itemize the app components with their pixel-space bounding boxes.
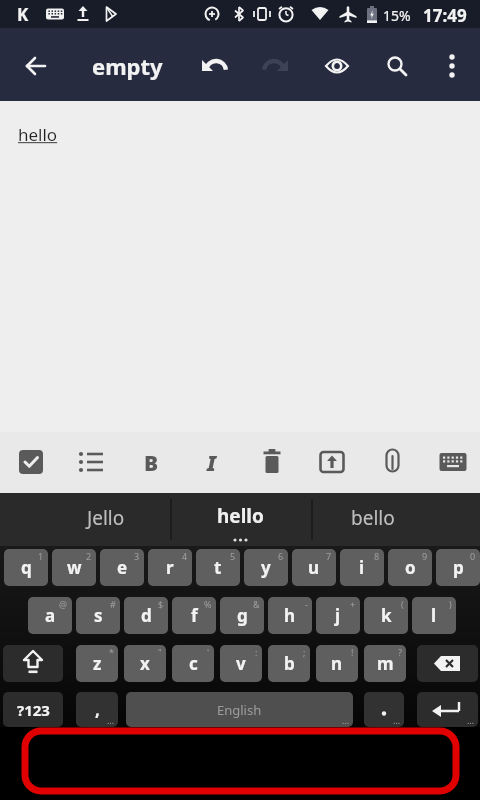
staticText: 1 xyxy=(38,550,44,562)
button[interactable]: a xyxy=(28,597,72,634)
staticText: … xyxy=(342,714,350,726)
button[interactable]: g xyxy=(220,597,264,634)
staticText: : xyxy=(255,646,258,658)
button[interactable] xyxy=(338,5,358,23)
button[interactable]: l xyxy=(412,597,456,634)
staticText: j xyxy=(335,604,341,627)
button[interactable] xyxy=(385,448,401,476)
staticText: @ xyxy=(59,598,68,610)
staticText: ? xyxy=(398,646,402,658)
staticText: s xyxy=(94,604,103,627)
button[interactable]: o xyxy=(388,549,432,586)
staticText: ' xyxy=(207,646,210,658)
button[interactable] xyxy=(260,449,284,475)
staticText: o xyxy=(405,556,416,579)
staticText: ) xyxy=(449,598,452,610)
button[interactable]: w xyxy=(52,549,96,586)
button[interactable]: hello xyxy=(170,493,311,546)
button[interactable]: B xyxy=(144,449,159,478)
button[interactable]: n xyxy=(316,645,358,682)
button[interactable]: r xyxy=(148,549,192,586)
button[interactable] xyxy=(200,54,228,78)
button[interactable] xyxy=(252,5,272,23)
staticText: n xyxy=(331,652,343,675)
button[interactable] xyxy=(319,450,345,474)
staticText: 0 xyxy=(470,550,476,562)
staticText: 2 xyxy=(86,550,92,562)
button[interactable] xyxy=(417,645,478,682)
staticText: q xyxy=(21,556,32,579)
button[interactable] xyxy=(203,5,221,23)
staticText: … xyxy=(107,714,115,726)
staticText: u xyxy=(308,556,320,579)
button[interactable] xyxy=(447,53,457,79)
button[interactable] xyxy=(24,54,48,78)
button[interactable] xyxy=(74,5,92,23)
button[interactable]: u xyxy=(292,549,336,586)
button[interactable]: m xyxy=(364,645,406,682)
button[interactable] xyxy=(262,54,290,78)
button[interactable] xyxy=(78,450,104,474)
button[interactable]: t xyxy=(196,549,240,586)
button[interactable]: … xyxy=(364,692,404,727)
staticText: + xyxy=(350,598,356,610)
button[interactable]: z xyxy=(76,645,118,682)
staticText: 7 xyxy=(326,550,332,562)
button[interactable]: x xyxy=(124,645,166,682)
button[interactable]: d xyxy=(124,597,168,634)
button[interactable]: Jello xyxy=(0,493,170,546)
staticText: 3 xyxy=(134,550,140,562)
button[interactable]: k xyxy=(364,597,408,634)
staticText: , xyxy=(95,698,100,721)
button[interactable]: f xyxy=(172,597,216,634)
button[interactable]: q xyxy=(4,549,48,586)
button[interactable] xyxy=(45,7,65,21)
button[interactable] xyxy=(18,449,44,475)
staticText: x xyxy=(140,652,150,675)
button[interactable]: b xyxy=(268,645,310,682)
staticText: r xyxy=(166,556,174,579)
button[interactable] xyxy=(439,452,467,472)
staticText: t xyxy=(214,556,222,579)
button[interactable]: v xyxy=(220,645,262,682)
button[interactable] xyxy=(102,5,120,23)
staticText: h xyxy=(284,604,296,627)
staticText: k xyxy=(381,604,392,627)
button[interactable] xyxy=(324,55,350,77)
button[interactable]: , xyxy=(76,692,118,727)
button[interactable]: p xyxy=(436,549,480,586)
button[interactable]: c xyxy=(172,645,214,682)
staticText: w xyxy=(67,556,82,579)
button[interactable]: y xyxy=(244,549,288,586)
staticText: hello xyxy=(217,503,264,529)
staticText: ?123 xyxy=(17,700,50,720)
staticText: e xyxy=(117,556,128,579)
button[interactable]: I xyxy=(207,449,216,478)
button[interactable]: j xyxy=(316,597,360,634)
staticText: ! xyxy=(351,646,354,658)
staticText: 17:49 xyxy=(423,4,467,27)
button[interactable] xyxy=(231,5,247,23)
button[interactable]: e xyxy=(100,549,144,586)
button[interactable]: ?123 xyxy=(3,692,63,727)
staticText: … xyxy=(393,714,401,726)
staticText: d xyxy=(141,604,152,627)
button[interactable] xyxy=(385,54,409,78)
button[interactable]: … xyxy=(417,692,478,727)
staticText: English xyxy=(217,701,262,719)
button[interactable] xyxy=(310,5,330,23)
button[interactable]: bello xyxy=(311,493,480,546)
button[interactable]: h xyxy=(268,597,312,634)
staticText: empty xyxy=(92,51,163,81)
staticText: hello xyxy=(18,123,58,146)
button[interactable] xyxy=(277,5,295,23)
button[interactable]: i xyxy=(340,549,384,586)
staticText: 9 xyxy=(422,550,428,562)
button[interactable] xyxy=(3,645,63,682)
button[interactable]: s xyxy=(76,597,120,634)
staticText: Jello xyxy=(87,505,125,531)
staticText: c xyxy=(189,652,198,675)
button[interactable] xyxy=(366,5,378,24)
staticText: bello xyxy=(351,505,395,531)
button[interactable]: … xyxy=(126,692,353,727)
